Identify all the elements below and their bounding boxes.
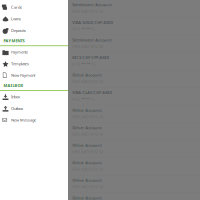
button[interactable]: New Payment (0, 69, 68, 81)
staticText: CH56 0483 5012 34 (72, 150, 103, 154)
button[interactable]: Other Account (68, 123, 200, 140)
button[interactable]: Other Account (68, 105, 200, 123)
staticText: Other Account (72, 125, 102, 130)
button[interactable]: VISA CLAS CHF AMD (68, 88, 200, 105)
button[interactable]: Other Account (68, 175, 200, 193)
button[interactable]: New Message (0, 114, 68, 126)
staticText: CH56 0483 5012 34 (72, 168, 103, 171)
button[interactable]: VISA GOLD CHF AMD (68, 18, 200, 35)
staticText: New Payment (11, 72, 35, 78)
button[interactable]: Loans (0, 13, 68, 25)
staticText: Other Account (72, 178, 102, 183)
button[interactable]: Cards (0, 1, 68, 13)
button[interactable]: Deposits (0, 25, 68, 36)
button[interactable]: Inbox (0, 91, 68, 103)
button[interactable]: Payments (0, 46, 68, 58)
button[interactable]: Settlement Account (68, 35, 200, 53)
button[interactable]: Settlement Account (68, 0, 200, 18)
staticText: VISA GOLD CHF AMD (72, 20, 113, 25)
staticText: CH56 0483 5012 34 (72, 115, 103, 119)
button[interactable]: Other Account (68, 158, 200, 176)
staticText: CH56 0483 5012 34 (72, 45, 103, 49)
staticText: Other Account (72, 160, 102, 165)
button[interactable]: Templates (0, 58, 68, 69)
staticText: Templates (11, 61, 29, 66)
staticText: Other Account (72, 107, 102, 113)
button[interactable]: Other Account (68, 140, 200, 158)
staticText: Other Account (72, 142, 102, 148)
staticText: Deposits (11, 28, 26, 33)
staticText: Inbox (11, 94, 20, 99)
staticText: Outbox (11, 106, 23, 111)
staticText: CH56 0483 5012 34 (72, 80, 103, 84)
staticText: Loans (11, 16, 21, 21)
staticText: New Message (11, 117, 36, 123)
staticText: CH56 0483 5012 34 (72, 10, 103, 13)
staticText: Settlement Account (72, 2, 112, 7)
staticText: CH56 0483 5012 34 (72, 133, 103, 136)
button[interactable]: Other Account (68, 193, 200, 200)
staticText: 4912 **** **** 12 (72, 28, 95, 31)
staticText: Other Account (72, 72, 102, 78)
staticText: Other Account (72, 195, 102, 200)
staticText: Settlement Account (72, 37, 112, 42)
button[interactable]: MCS CHF CPF AMD (68, 53, 200, 70)
staticText: 5112 **** **** 12 (72, 63, 95, 66)
staticText: Cards (11, 4, 22, 10)
button[interactable]: Other Account (68, 70, 200, 88)
staticText: CH56 0483 5012 34 (72, 185, 103, 189)
button[interactable]: Outbox (0, 103, 68, 114)
staticText: MCS CHF CPF AMD (72, 55, 109, 60)
staticText: PAYMENTS (3, 38, 24, 43)
staticText: Payments (11, 49, 28, 55)
staticText: MAILBOX (3, 83, 23, 88)
staticText: VISA CLAS CHF AMD (72, 90, 112, 95)
staticText: 4012 **** **** 12 (72, 98, 95, 101)
